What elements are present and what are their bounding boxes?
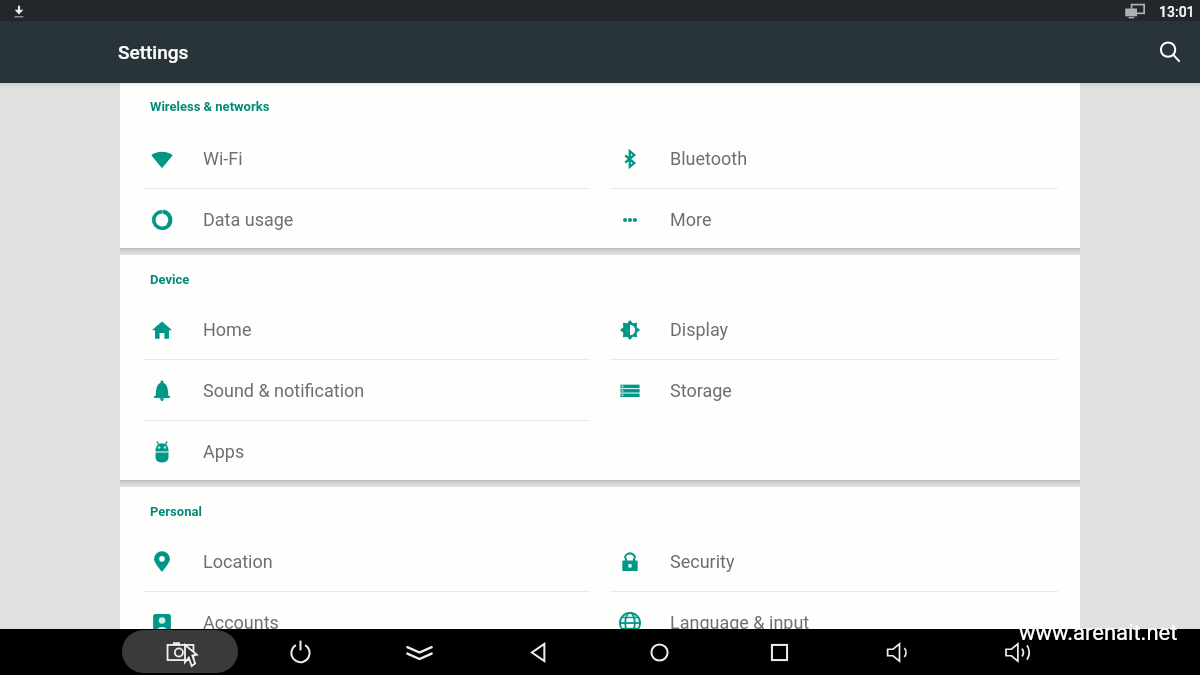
button[interactable]: SCREENSHOT bbox=[150, 629, 210, 675]
button[interactable]: VOLUP bbox=[989, 629, 1049, 675]
button[interactable]: Storage bbox=[600, 360, 1080, 421]
staticText: Language & input bbox=[670, 612, 810, 633]
staticText: Personal bbox=[150, 504, 202, 519]
button[interactable]: BACK bbox=[509, 629, 569, 675]
staticText: Security bbox=[670, 551, 735, 572]
button[interactable]: Wi-Fi bbox=[120, 128, 600, 189]
button[interactable]: Apps bbox=[120, 421, 600, 482]
staticText: Apps bbox=[203, 441, 245, 462]
staticText: Storage bbox=[670, 380, 732, 401]
staticText: Bluetooth bbox=[670, 148, 748, 169]
staticText: Home bbox=[203, 319, 252, 340]
staticText: Wireless & networks bbox=[150, 99, 270, 114]
staticText: Location bbox=[203, 551, 273, 572]
button[interactable]: Bluetooth bbox=[600, 128, 1080, 189]
button[interactable]: POWER bbox=[270, 629, 330, 675]
button[interactable]: RECENT bbox=[749, 629, 809, 675]
staticText: 13:01 bbox=[1159, 4, 1195, 20]
button[interactable]: COLLAPSE bbox=[389, 629, 449, 675]
button[interactable]: Display bbox=[600, 299, 1080, 360]
staticText: Settings bbox=[118, 41, 189, 63]
button[interactable]: HOME bbox=[629, 629, 689, 675]
staticText: Sound & notification bbox=[203, 380, 365, 401]
button[interactable]: Search bbox=[1146, 28, 1194, 76]
button[interactable]: Language & input bbox=[600, 592, 1080, 653]
staticText: Device bbox=[150, 272, 190, 287]
staticText: Accounts bbox=[203, 612, 279, 633]
button[interactable]: Security bbox=[600, 531, 1080, 592]
button[interactable]: Accounts bbox=[120, 592, 600, 653]
staticText: More bbox=[670, 209, 712, 230]
button[interactable]: Data usage bbox=[120, 189, 600, 250]
button[interactable]: Location bbox=[120, 531, 600, 592]
staticText: www.arenait.net bbox=[1019, 620, 1178, 646]
staticText: Data usage bbox=[203, 209, 294, 230]
button[interactable]: Sound & notification bbox=[120, 360, 600, 421]
staticText: Display bbox=[670, 319, 729, 340]
button[interactable]: VOLDOWN bbox=[869, 629, 929, 675]
staticText: Wi-Fi bbox=[203, 148, 243, 169]
button[interactable]: More bbox=[600, 189, 1080, 250]
button[interactable]: Home bbox=[120, 299, 600, 360]
